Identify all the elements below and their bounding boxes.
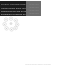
staticText: Product overview page bbox=[1, 3, 26, 6]
staticText: Lorem ipsum dolor sit amet bbox=[25, 63, 51, 66]
staticText: Lorem ipsu bbox=[29, 9, 39, 12]
staticText: adipiscing elit sed do eiusmod tem bbox=[1, 10, 39, 13]
staticText: Lorem ipsu bbox=[29, 12, 39, 14]
staticText: Lorem ipsu bbox=[29, 6, 39, 9]
staticText: Lorem ipsu bbox=[29, 3, 39, 6]
staticText: incididunt ut labore et do bbox=[1, 13, 29, 16]
staticText: Lorem ipsum dolor sit amet consec bbox=[1, 7, 39, 10]
